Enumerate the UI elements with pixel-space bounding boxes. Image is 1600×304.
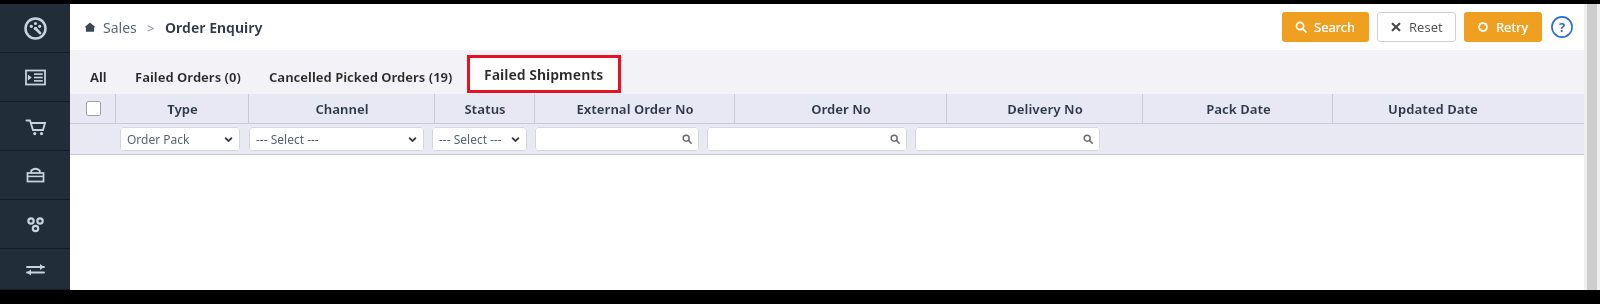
button[interactable]: Status <box>435 94 535 123</box>
button[interactable]: Purchasing <box>0 151 70 200</box>
staticText: --- Select --- <box>439 131 502 147</box>
button[interactable]: Order No <box>735 94 947 123</box>
button[interactable]: Sales <box>84 18 263 37</box>
button[interactable]: Cancelled Picked Orders (19) <box>255 61 467 93</box>
button[interactable]: --- Select --- <box>249 127 424 151</box>
button[interactable]: Search field <box>915 127 1100 151</box>
staticText: Failed Orders (0) <box>135 68 241 86</box>
button[interactable]: Channel <box>249 94 435 123</box>
staticText: Retry <box>1496 18 1529 36</box>
button[interactable]: External Order No <box>535 94 735 123</box>
staticText: Failed Shipments <box>484 65 604 84</box>
staticText: Type <box>167 100 198 118</box>
staticText: Updated Date <box>1388 100 1478 118</box>
staticText: Order No <box>811 100 871 118</box>
button[interactable]: Failed Shipments <box>470 58 618 90</box>
staticText: ? <box>1559 18 1566 36</box>
button[interactable]: Reset <box>1377 12 1456 42</box>
button[interactable]: Inventory <box>0 200 70 249</box>
button[interactable]: Sales <box>0 102 70 151</box>
staticText: > <box>147 19 155 37</box>
button[interactable]: Updated Date <box>1333 94 1533 123</box>
button[interactable]: Help <box>1550 15 1574 39</box>
button[interactable]: Orders <box>0 53 70 102</box>
button[interactable]: Search <box>1282 12 1369 42</box>
button[interactable]: --- Select --- <box>432 127 527 151</box>
staticText: Reset <box>1409 18 1443 36</box>
button[interactable]: Dashboard <box>0 4 70 53</box>
staticText: External Order No <box>576 100 694 118</box>
button[interactable]: Type <box>116 94 249 123</box>
button[interactable]: Search field <box>707 127 907 151</box>
staticText: All <box>90 68 107 86</box>
button[interactable]: Delivery No <box>947 94 1143 123</box>
button[interactable]: All <box>76 61 121 93</box>
staticText: Sales <box>103 18 137 37</box>
staticText: Order Pack <box>127 131 190 147</box>
staticText: --- Select --- <box>256 131 319 147</box>
button[interactable]: Failed Orders (0) <box>121 61 255 93</box>
staticText: Delivery No <box>1007 100 1083 118</box>
staticText: Order Enquiry <box>165 18 263 37</box>
staticText: Cancelled Picked Orders (19) <box>269 68 453 86</box>
button[interactable]: Transfers <box>0 249 70 290</box>
button[interactable]: Retry <box>1464 12 1542 42</box>
staticText: Channel <box>315 100 369 118</box>
button[interactable]: Search field <box>535 127 699 151</box>
button[interactable]: Order Pack <box>120 127 240 151</box>
button[interactable]: Pack Date <box>1143 94 1333 123</box>
button[interactable]: Select all <box>70 94 116 123</box>
staticText: Pack Date <box>1206 100 1271 118</box>
staticText: Search <box>1314 18 1356 36</box>
staticText: Status <box>464 100 506 118</box>
